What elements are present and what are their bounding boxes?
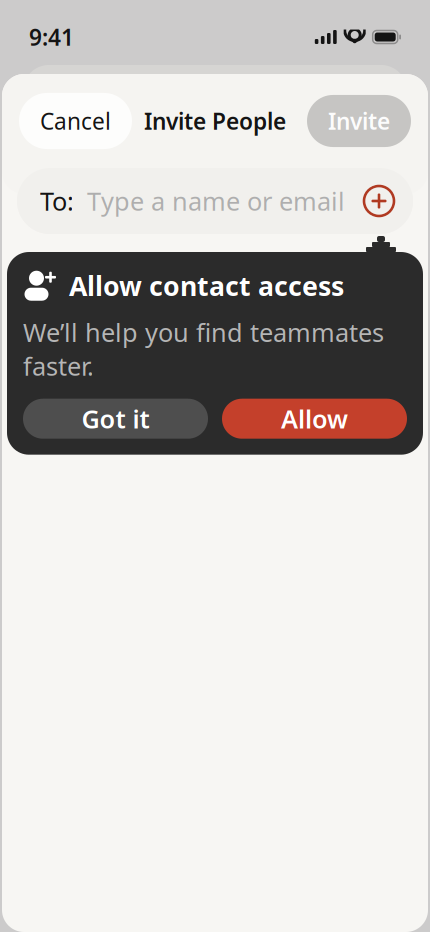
button[interactable]: Add contact bbox=[357, 179, 401, 223]
staticText: Invite People bbox=[144, 106, 286, 136]
button[interactable]: Cancel bbox=[19, 93, 132, 149]
staticText: Allow contact access bbox=[69, 268, 344, 303]
staticText: To: bbox=[40, 184, 74, 218]
staticText: Type a name or email bbox=[87, 184, 345, 218]
staticText: To: bbox=[40, 184, 74, 218]
staticText: Invite People bbox=[144, 106, 286, 136]
staticText: Allow bbox=[281, 402, 348, 435]
staticText: Invite bbox=[328, 106, 390, 136]
staticText: Invite bbox=[328, 106, 390, 136]
staticText: Cancel bbox=[40, 106, 111, 136]
button[interactable]: Invite bbox=[307, 95, 411, 147]
staticText: Got it bbox=[81, 402, 149, 435]
button[interactable]: Add contact bbox=[357, 179, 401, 223]
staticText: Type a name or email bbox=[87, 184, 345, 218]
button[interactable]: Got it bbox=[23, 399, 208, 439]
button[interactable]: Cancel bbox=[19, 93, 132, 149]
staticText: We’ll help you find teammates faster. bbox=[23, 315, 384, 383]
button[interactable]: Invite bbox=[307, 95, 411, 147]
staticText: Cancel bbox=[40, 106, 111, 136]
staticText: 9:41 bbox=[29, 22, 74, 52]
button[interactable]: Allow bbox=[222, 399, 407, 439]
